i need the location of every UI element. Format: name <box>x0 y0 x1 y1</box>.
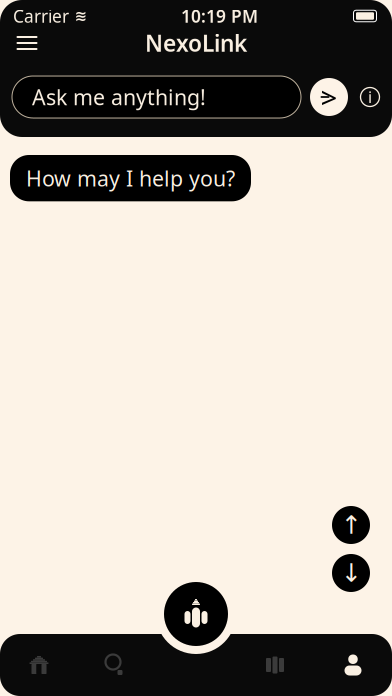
button[interactable]: Information <box>357 78 383 116</box>
button[interactable]: Launch assistant <box>164 582 228 646</box>
staticText: 10:19 PM <box>181 4 258 27</box>
staticText: ≋ <box>74 8 86 24</box>
button[interactable]: Scroll up <box>332 506 370 544</box>
button[interactable]: Home <box>0 637 78 693</box>
button[interactable]: Menu <box>6 24 48 62</box>
staticText: i <box>368 86 372 108</box>
button[interactable]: Map <box>236 637 314 693</box>
staticText: ↑ <box>340 511 361 539</box>
button[interactable]: Scroll down <box>332 554 370 592</box>
staticText: > <box>320 77 337 116</box>
button[interactable]: Send <box>310 78 348 116</box>
staticText: How may I help you? <box>26 164 235 192</box>
staticText: NexoLink <box>145 28 247 58</box>
staticText: ↓ <box>340 559 361 587</box>
button[interactable]: Search <box>78 637 156 693</box>
staticText: Ask me anything! <box>32 83 206 111</box>
staticText: Carrier <box>13 4 69 27</box>
button[interactable]: Ask me anything! <box>12 76 301 118</box>
button[interactable]: Profile <box>314 637 392 693</box>
